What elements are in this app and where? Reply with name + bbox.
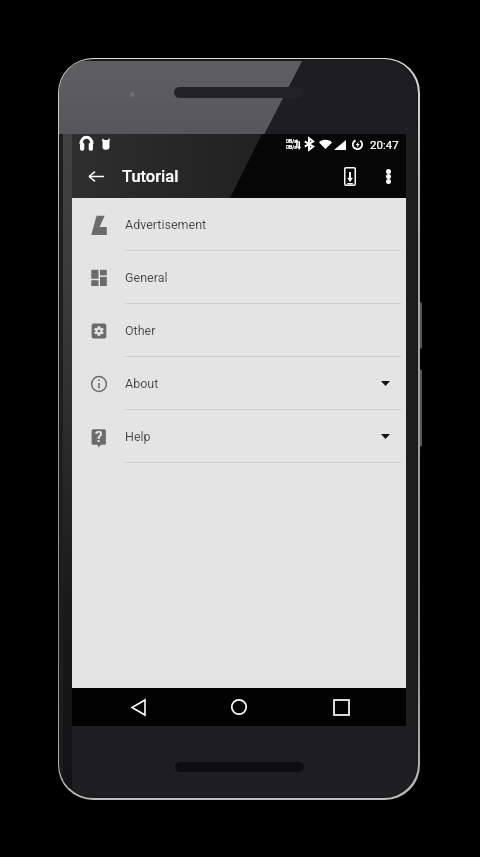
button[interactable]: General <box>72 251 406 304</box>
button[interactable]: Navigate up <box>77 154 114 198</box>
staticText: Advertisement <box>125 217 207 232</box>
staticText: Help <box>125 429 151 444</box>
staticText: Other <box>125 323 156 338</box>
staticText: Tutorial <box>122 167 179 186</box>
button[interactable]: Advertisement <box>72 198 406 251</box>
staticText: ? <box>95 428 103 446</box>
staticText: 20:47 <box>370 138 399 151</box>
staticText: 0B/s <box>286 138 297 144</box>
button[interactable]: Recent apps <box>321 688 361 726</box>
button[interactable]: About <box>72 357 406 410</box>
button[interactable]: ? <box>72 410 406 463</box>
button[interactable]: More options <box>374 154 402 198</box>
button[interactable]: Home <box>219 688 259 726</box>
staticText: About <box>125 376 159 391</box>
button[interactable]: Install app <box>330 154 370 198</box>
staticText: 0B/s <box>286 144 297 150</box>
button[interactable]: Other <box>72 304 406 357</box>
staticText: General <box>125 270 168 285</box>
button[interactable]: Back <box>118 688 158 726</box>
